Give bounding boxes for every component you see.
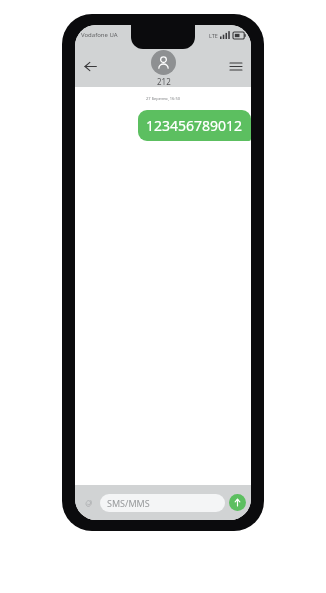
staticText: 123456789012 bbox=[146, 116, 243, 135]
button[interactable]: Attach bbox=[80, 495, 96, 511]
button[interactable]: Send bbox=[229, 494, 246, 511]
staticText: SMS/MMS bbox=[107, 497, 150, 509]
button[interactable]: SMS/MMS bbox=[100, 494, 225, 512]
button[interactable]: Menu bbox=[225, 55, 247, 77]
button[interactable]: 123456789012 bbox=[138, 110, 251, 141]
button[interactable]: 212 bbox=[151, 50, 176, 87]
staticText: 212 bbox=[157, 76, 171, 87]
staticText: LTE bbox=[209, 32, 218, 39]
staticText: Vodafone UA bbox=[81, 31, 118, 39]
button[interactable]: Back bbox=[79, 55, 101, 77]
staticText: 27 Березня, 16:50 bbox=[75, 96, 251, 101]
